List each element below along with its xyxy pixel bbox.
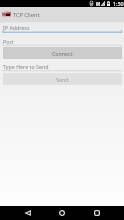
staticText: M bbox=[96, 1, 101, 7]
staticText: Connect bbox=[52, 50, 73, 57]
button[interactable]: Recent apps bbox=[87, 206, 107, 220]
staticText: Port bbox=[3, 38, 14, 45]
button[interactable]: Home bbox=[52, 206, 72, 220]
staticText: Send bbox=[56, 76, 69, 83]
staticText: Type Here to Send bbox=[3, 63, 49, 70]
button[interactable]: Connect bbox=[3, 47, 122, 59]
staticText: TCP Client bbox=[13, 11, 40, 19]
staticText: IP Address bbox=[3, 24, 30, 31]
button[interactable]: Back bbox=[17, 206, 37, 220]
staticText: 1:50 bbox=[113, 0, 124, 7]
button[interactable]: Send bbox=[3, 73, 122, 85]
